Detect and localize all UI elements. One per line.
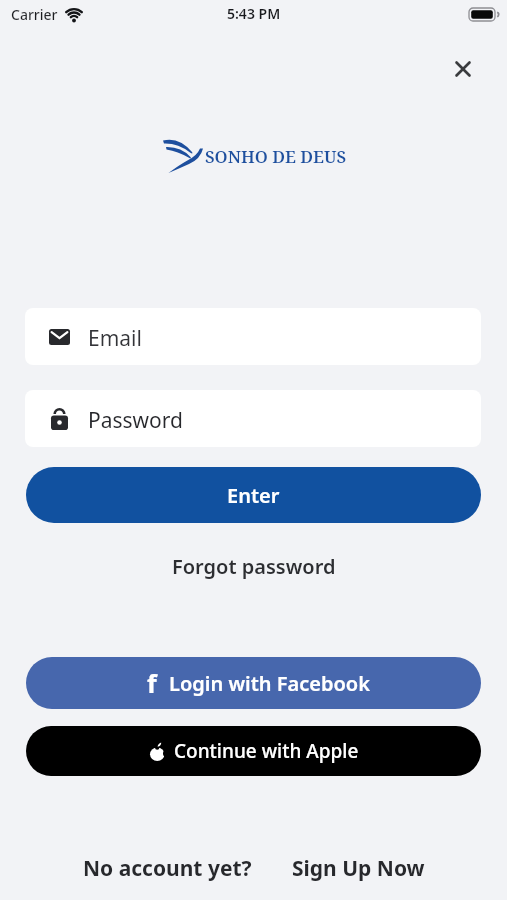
staticText: Password: [88, 406, 183, 435]
button[interactable]: Enter: [26, 467, 481, 523]
staticText: 5:43 PM: [227, 4, 281, 23]
button[interactable]: [447, 53, 479, 85]
staticText: f: [147, 666, 157, 700]
staticText: Email: [88, 324, 142, 353]
button[interactable]: Continue with Apple: [26, 726, 481, 776]
staticText: SONHO DE DEUS: [205, 145, 347, 168]
button[interactable]: Sign Up Now: [292, 854, 425, 883]
staticText: Continue with Apple: [174, 738, 359, 764]
button[interactable]: f: [26, 657, 481, 709]
button[interactable]: No account yet?: [83, 854, 252, 883]
staticText: Forgot password: [172, 553, 336, 580]
staticText: Login with Facebook: [169, 670, 370, 697]
staticText: Enter: [227, 482, 280, 509]
staticText: Sign Up Now: [292, 854, 425, 883]
button[interactable]: Forgot password: [166, 547, 342, 586]
staticText: Carrier: [11, 5, 58, 24]
staticText: No account yet?: [83, 854, 252, 883]
button[interactable]: Password: [25, 390, 481, 447]
button[interactable]: Email: [25, 308, 481, 365]
